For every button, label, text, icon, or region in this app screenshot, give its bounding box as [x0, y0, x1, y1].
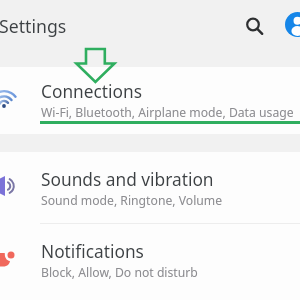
button[interactable]: Sounds and vibration: [0, 152, 300, 222]
staticText: Wi-Fi, Bluetooth, Airplane mode, Data us…: [41, 104, 294, 121]
staticText: Connections: [41, 80, 142, 104]
button[interactable]: Account: [285, 12, 300, 37]
button[interactable]: Search: [236, 8, 270, 42]
staticText: Sounds and vibration: [41, 168, 214, 192]
staticText: Block, Allow, Do not disturb: [41, 264, 198, 281]
button[interactable]: Notifications: [0, 223, 300, 293]
staticText: Notifications: [41, 240, 144, 264]
staticText: Settings: [0, 14, 67, 38]
button[interactable]: Connections: [0, 67, 300, 134]
staticText: Sound mode, Ringtone, Volume: [41, 192, 223, 209]
